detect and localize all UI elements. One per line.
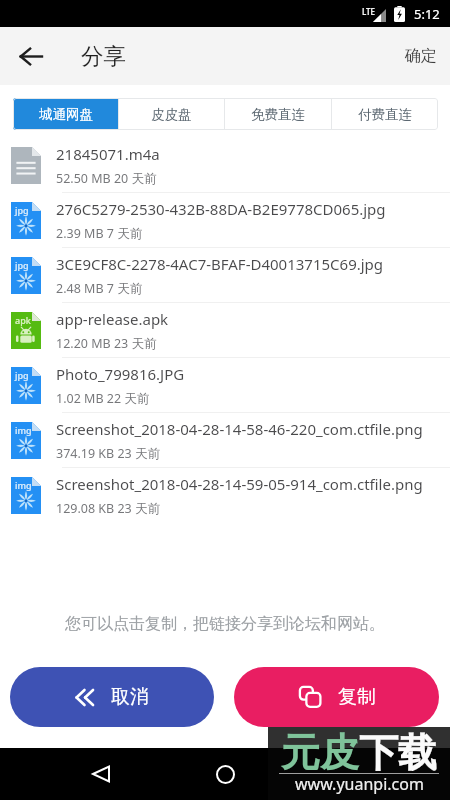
staticText: 城通网盘 bbox=[39, 106, 93, 123]
staticText: 1.02 MB 22 天前 bbox=[56, 390, 150, 407]
staticText: 付费直连 bbox=[358, 106, 412, 123]
staticText: 3CE9CF8C-2278-4AC7-BFAF-D40013715C69.jpg bbox=[56, 254, 384, 274]
staticText: 元皮 bbox=[281, 728, 359, 777]
staticText: 5:12 bbox=[414, 5, 440, 23]
button[interactable]: apk bbox=[0, 303, 450, 358]
staticText: 确定 bbox=[405, 46, 437, 66]
staticText: img bbox=[15, 479, 32, 491]
staticText: 276C5279-2530-432B-88DA-B2E9778CD065.jpg bbox=[56, 199, 386, 219]
staticText: jpg bbox=[15, 259, 29, 271]
button[interactable]: jpg bbox=[0, 248, 450, 303]
staticText: www.yuanpi.com bbox=[295, 773, 424, 795]
staticText: jpg bbox=[15, 204, 29, 216]
staticText: Screenshot_2018-04-28-14-58-46-220_com.c… bbox=[56, 419, 423, 439]
staticText: 52.50 MB 20 天前 bbox=[56, 170, 157, 187]
staticText: Screenshot_2018-04-28-14-59-05-914_com.c… bbox=[56, 474, 423, 494]
staticText: 取消 bbox=[111, 685, 149, 709]
staticText: 2.48 MB 7 天前 bbox=[56, 280, 143, 297]
button[interactable]: 复制 bbox=[234, 667, 439, 727]
button[interactable]: jpg bbox=[0, 193, 450, 248]
button[interactable]: Home bbox=[201, 750, 249, 798]
staticText: img bbox=[15, 424, 32, 436]
staticText: 免费直连 bbox=[251, 106, 305, 123]
staticText: 129.08 KB 23 天前 bbox=[56, 500, 161, 517]
button[interactable]: 确定 bbox=[392, 27, 450, 85]
staticText: 复制 bbox=[338, 685, 376, 709]
staticText: 您可以点击复制，把链接分享到论坛和网站。 bbox=[65, 614, 385, 634]
staticText: 21845071.m4a bbox=[56, 144, 160, 164]
button[interactable]: 免费直连 bbox=[225, 98, 331, 130]
button[interactable]: img bbox=[0, 413, 450, 468]
staticText: app-release.apk bbox=[56, 309, 169, 329]
staticText: 分享 bbox=[81, 42, 126, 70]
button[interactable]: 城通网盘 bbox=[13, 98, 118, 130]
button[interactable]: Recents bbox=[326, 750, 374, 798]
button[interactable]: 皮皮盘 bbox=[119, 98, 224, 130]
staticText: 12.20 MB 23 天前 bbox=[56, 335, 157, 352]
button[interactable]: Back bbox=[0, 27, 62, 85]
staticText: LTE bbox=[362, 6, 376, 17]
button[interactable]: 付费直连 bbox=[332, 98, 438, 130]
staticText: 2.39 MB 7 天前 bbox=[56, 225, 143, 242]
staticText: 皮皮盘 bbox=[151, 106, 192, 123]
staticText: Photo_799816.JPG bbox=[56, 364, 185, 384]
staticText: 下载 bbox=[359, 728, 437, 777]
button[interactable]: Back bbox=[77, 750, 125, 798]
button[interactable]: img bbox=[0, 468, 450, 523]
button[interactable]: 取消 bbox=[10, 667, 214, 727]
button[interactable]: jpg bbox=[0, 358, 450, 413]
staticText: 374.19 KB 23 天前 bbox=[56, 445, 161, 462]
button[interactable]: 21845071.m4a bbox=[0, 138, 450, 193]
staticText: apk bbox=[15, 314, 31, 326]
staticText: jpg bbox=[15, 369, 29, 381]
